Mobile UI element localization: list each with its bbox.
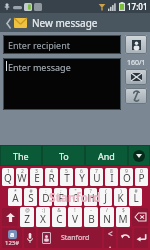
staticText: X [40,212,46,226]
button[interactable]: 5 [60,168,73,186]
button[interactable]: # [24,188,37,206]
button[interactable]: / [100,207,114,227]
staticText: W [17,171,27,185]
button[interactable]: Enter recipient [3,35,121,54]
staticText: < [108,228,113,239]
staticText: E [34,171,40,185]
button[interactable]: Enter [134,228,148,248]
staticText: :) [42,207,45,214]
staticText: L [133,191,139,205]
staticText: U [93,171,101,185]
button[interactable]: ? [84,188,97,206]
staticText: 9 [125,168,128,175]
staticText: 123# [5,239,20,247]
staticText: S [28,191,34,205]
staticText: Enter recipient [8,39,70,51]
button[interactable]: ! [68,207,82,227]
button[interactable]: The [0,145,42,166]
staticText: # [134,188,138,195]
staticText: Enter message [8,61,71,73]
staticText: T [64,171,70,185]
button[interactable]: 3 [30,168,43,186]
staticText: Q [4,171,12,185]
staticText: 2 [21,168,24,175]
staticText: And [98,150,115,162]
button[interactable]: Undo [118,228,132,248]
staticText: Stanford [49,189,101,205]
button[interactable]: Space [38,228,102,248]
button[interactable]: ) [114,188,127,206]
staticText: " [74,188,77,195]
button[interactable]: 6 [75,168,88,186]
button[interactable]: 8 [105,168,118,186]
button[interactable]: Symbols [2,228,22,248]
button[interactable]: 0 [135,168,148,186]
button[interactable]: Add recipient from contacts [125,35,147,54]
staticText: R [48,171,55,185]
staticText: @ [25,207,30,214]
staticText: Y [79,171,85,185]
button[interactable]: More suggestions [128,145,150,166]
button[interactable]: $ [116,207,130,227]
button[interactable]: :) [36,207,50,227]
staticText: ( [105,188,107,195]
staticText: ) [120,188,122,195]
button[interactable]: 4 [45,168,58,186]
button[interactable]: 1 [2,168,14,186]
button[interactable]: 2 [16,168,28,186]
button[interactable]: ; [54,188,67,206]
staticText: - [90,207,92,214]
staticText: 6 [80,168,83,175]
button[interactable]: Shift [2,208,18,226]
staticText: $ [122,207,125,214]
staticText: D [42,191,50,205]
staticText: . [109,239,112,248]
button[interactable]: Attach [125,88,147,104]
button[interactable]: : [39,188,52,206]
staticText: : [45,188,47,195]
button[interactable]: 7 [90,168,103,186]
button[interactable]: * [8,188,22,206]
button[interactable]: @ [20,207,34,227]
button[interactable]: 9 [120,168,133,186]
button[interactable]: Enter message [3,58,121,110]
staticText: 4 [50,168,53,175]
staticText: ! [74,207,76,214]
staticText: 160/1 [127,58,146,68]
staticText: O [123,171,131,185]
button[interactable]: Send message [125,69,147,85]
button[interactable]: Punctuation [104,228,116,248]
button[interactable]: To [42,145,85,166]
staticText: 7 [95,168,98,175]
staticText: C [56,212,63,226]
staticText: F [58,191,64,205]
button[interactable]: And [85,145,128,166]
staticText: 5 [65,168,68,175]
button[interactable]: Backspace [132,208,148,226]
staticText: Stanford [61,233,90,243]
button[interactable]: ( [99,188,112,206]
staticText: B [88,212,95,226]
button[interactable]: & [52,207,66,227]
staticText: G [72,191,80,205]
button[interactable]: " [69,188,82,206]
button[interactable]: Voice input [24,228,36,248]
staticText: 3 [35,168,38,175]
staticText: I [110,171,114,185]
button[interactable]: # [129,188,142,206]
staticText: # [29,188,33,195]
staticText: M [118,212,128,226]
staticText: a [10,230,15,239]
staticText: 1 [7,168,10,175]
staticText: 8 [110,168,113,175]
staticText: P [138,171,145,185]
staticText: A [12,191,19,205]
staticText: New message [32,16,98,30]
staticText: ? [89,188,92,195]
button[interactable]: - [84,207,98,227]
staticText: J [104,191,107,205]
staticText: Z [24,212,30,226]
staticText: / [106,207,108,214]
staticText: & [57,207,61,214]
button[interactable]: Back [0,13,32,32]
